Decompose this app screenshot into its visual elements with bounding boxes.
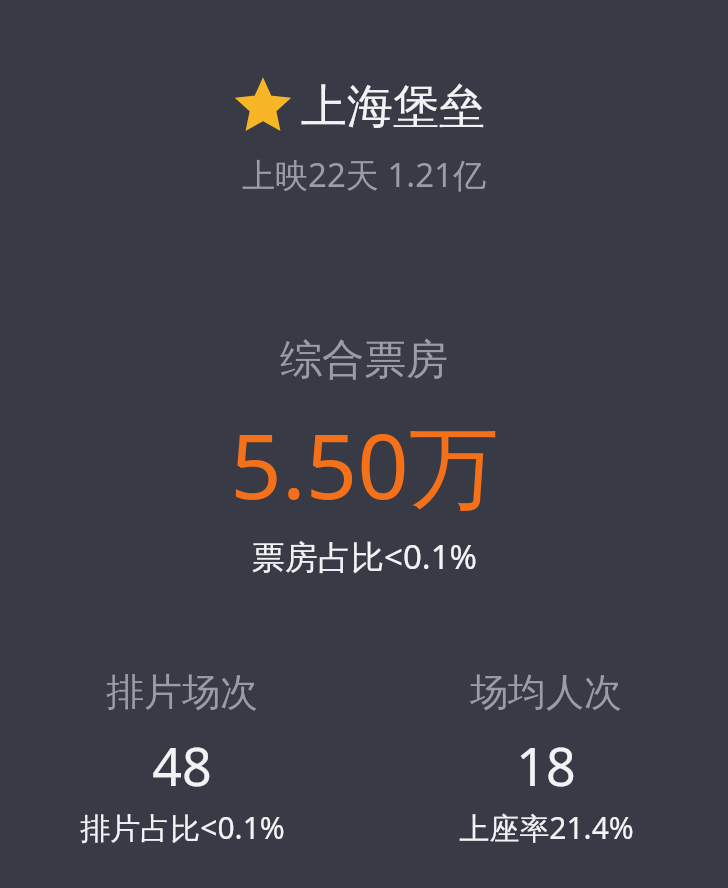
staticText: 上映22天 1.21亿 xyxy=(242,152,486,197)
button[interactable]: 排片场次 xyxy=(0,668,364,848)
staticText: 排片占比<0.1% xyxy=(80,807,285,848)
staticText: 48 xyxy=(152,730,212,801)
button[interactable]: 综合票房 xyxy=(0,334,728,579)
staticText: 场均人次 xyxy=(470,668,622,716)
staticText: 上海堡垒 xyxy=(301,78,485,136)
staticText: 18 xyxy=(516,730,576,801)
staticText: 排片场次 xyxy=(106,668,258,716)
staticText: 票房占比<0.1% xyxy=(252,534,477,579)
staticText: 综合票房 xyxy=(280,334,448,387)
other: Favourite xyxy=(243,87,283,127)
staticText: 上座率21.4% xyxy=(459,807,634,848)
button[interactable]: 场均人次 xyxy=(364,668,728,848)
button[interactable]: Favourite xyxy=(235,78,493,136)
staticText: 5.50万 xyxy=(230,403,499,526)
